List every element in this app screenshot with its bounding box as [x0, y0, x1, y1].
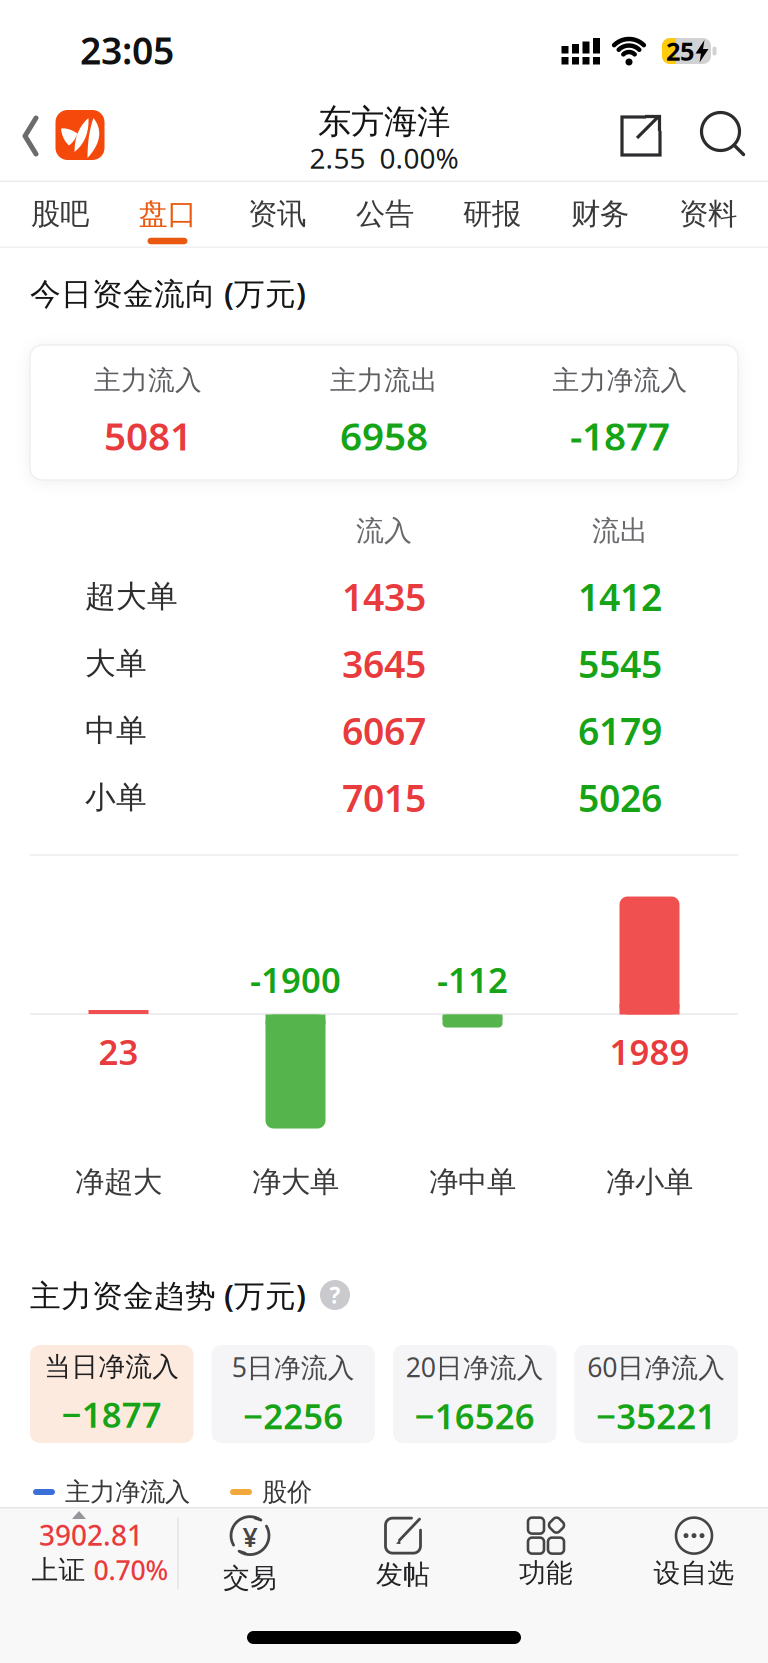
staticText: 6958	[340, 410, 428, 461]
staticText: 23:05	[80, 25, 174, 75]
staticText: 发帖	[376, 1558, 430, 1591]
button[interactable]: 资料	[660, 184, 756, 244]
staticText: 2.55 0.00%	[309, 139, 458, 177]
button[interactable]: 交易	[223, 1512, 277, 1594]
staticText: 财务	[571, 196, 629, 232]
staticText: 7015	[342, 773, 426, 822]
button[interactable]: Back	[23, 116, 39, 156]
button[interactable]: 20日净流入	[393, 1345, 556, 1443]
staticText: 净超大	[75, 1164, 162, 1200]
staticText: 资料	[679, 196, 737, 232]
staticText: 1989	[609, 1028, 689, 1074]
button[interactable]: 功能	[519, 1517, 573, 1589]
staticText: 主力资金趋势 (万元)	[30, 1275, 306, 1315]
staticText: 流入	[356, 514, 412, 548]
staticText: 主力流出	[330, 364, 438, 397]
button[interactable]: 研报	[444, 184, 540, 244]
staticText: 流出	[592, 514, 648, 548]
staticText: 主力净流入	[552, 364, 687, 397]
staticText: 东方海洋	[318, 101, 450, 142]
staticText: 20日净流入	[406, 1349, 544, 1385]
button[interactable]: 资讯	[229, 184, 325, 244]
staticText: 5026	[578, 773, 662, 822]
staticText: 1435	[342, 572, 426, 621]
button[interactable]: 公告	[337, 184, 433, 244]
staticText: −2256	[243, 1393, 343, 1439]
staticText: 净大单	[252, 1164, 339, 1200]
button[interactable]: App home	[55, 110, 104, 160]
button[interactable]: Search	[700, 111, 745, 156]
staticText: 股吧	[31, 196, 89, 232]
staticText: 设自选	[653, 1557, 734, 1589]
staticText: 25	[666, 34, 694, 68]
staticText: -1877	[570, 410, 670, 461]
staticText: 净小单	[606, 1164, 693, 1200]
staticText: 6179	[578, 706, 662, 755]
button[interactable]: 盘口	[119, 184, 215, 244]
staticText: 5545	[578, 639, 662, 688]
staticText: 公告	[356, 196, 414, 232]
button[interactable]: 当日净流入	[30, 1345, 193, 1443]
staticText: 3902.81	[39, 1516, 143, 1554]
button[interactable]: 股吧	[12, 184, 108, 244]
button[interactable]: 设自选	[653, 1517, 734, 1589]
staticText: 3645	[342, 639, 426, 688]
staticText: 60日净流入	[587, 1349, 725, 1385]
button[interactable]: 帮助	[320, 1280, 350, 1310]
staticText: 大单	[85, 645, 147, 682]
staticText: 6067	[342, 706, 426, 755]
staticText: −35221	[596, 1393, 716, 1439]
staticText: 上证	[31, 1554, 85, 1586]
staticText: 超大单	[85, 578, 178, 615]
staticText: 中单	[85, 712, 147, 749]
staticText: 5日净流入	[232, 1349, 355, 1385]
staticText: 5081	[104, 410, 192, 461]
staticText: 股价	[262, 1476, 312, 1507]
staticText: 主力净流入	[65, 1476, 190, 1507]
staticText: -112	[437, 956, 508, 1002]
staticText: 交易	[223, 1562, 277, 1594]
staticText: 0.70%	[93, 1552, 168, 1588]
staticText: 1412	[578, 572, 662, 621]
staticText: 小单	[85, 779, 147, 816]
staticText: ?	[329, 1280, 340, 1310]
staticText: −1877	[62, 1391, 162, 1437]
button[interactable]: 上证指数 3902.81	[0, 1507, 178, 1607]
staticText: 盘口	[138, 196, 196, 232]
staticText: 研报	[463, 196, 521, 232]
button[interactable]: 60日净流入	[574, 1345, 738, 1443]
staticText: 当日净流入	[44, 1351, 179, 1383]
button[interactable]: 财务	[552, 184, 648, 244]
button[interactable]: 5日净流入	[211, 1345, 375, 1443]
staticText: -1900	[250, 956, 341, 1002]
button[interactable]: Share	[620, 115, 662, 157]
button[interactable]: 发帖	[376, 1515, 430, 1591]
staticText: 主力流入	[94, 364, 202, 397]
staticText: ¥	[242, 1519, 257, 1554]
staticText: 净中单	[429, 1164, 516, 1200]
staticText: 资讯	[248, 196, 306, 232]
staticText: 功能	[519, 1557, 573, 1589]
staticText: 今日资金流向 (万元)	[30, 273, 306, 313]
staticText: −16526	[415, 1393, 535, 1439]
staticText: 23	[98, 1028, 138, 1074]
